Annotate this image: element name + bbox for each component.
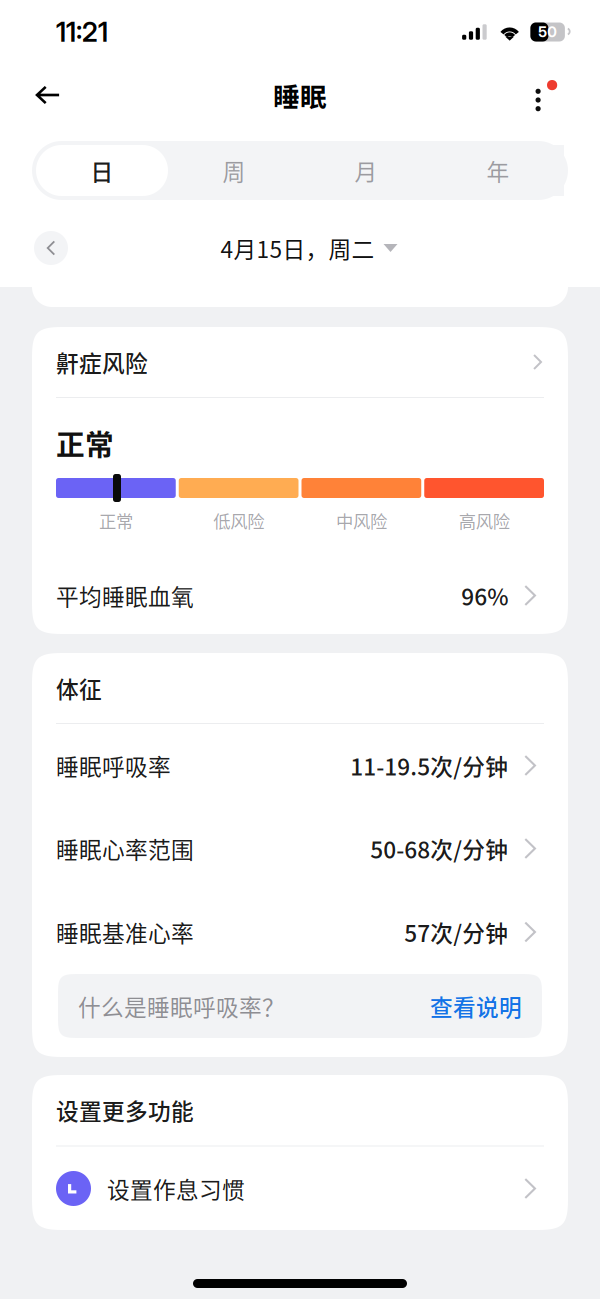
button[interactable]: 日: [36, 145, 168, 196]
button[interactable]: 年: [432, 145, 564, 196]
button[interactable]: 睡眠心率范围: [32, 807, 568, 890]
staticText: 什么是睡眠呼吸率？: [78, 990, 285, 1022]
staticText: 高风险: [459, 508, 510, 533]
button[interactable]: Previous day: [34, 231, 68, 265]
button[interactable]: 周: [168, 145, 300, 196]
staticText: 11:21: [56, 16, 108, 48]
staticText: 11-19.5次/分钟: [350, 749, 508, 782]
button[interactable]: 睡眠基准心率: [32, 890, 568, 974]
staticText: 月: [354, 154, 377, 187]
staticText: 设置作息习惯: [107, 1172, 245, 1205]
button[interactable]: More options: [518, 65, 578, 125]
staticText: 周: [222, 154, 245, 187]
staticText: 正常: [99, 508, 133, 533]
staticText: 睡眠基准心率: [56, 916, 194, 948]
staticText: 4月15日，周二: [220, 232, 374, 264]
staticText: 日: [90, 154, 113, 187]
staticText: 96%: [461, 579, 508, 612]
staticText: 睡眠心率范围: [56, 832, 194, 865]
staticText: 中风险: [336, 508, 387, 533]
staticText: 正常: [56, 422, 114, 464]
staticText: 睡眠: [273, 76, 327, 114]
button[interactable]: Back: [18, 65, 78, 125]
staticText: 50-68次/分钟: [370, 832, 508, 865]
button[interactable]: 睡眠呼吸率: [32, 724, 568, 807]
staticText: 年: [486, 154, 509, 187]
button[interactable]: 鼾症风险: [32, 327, 568, 397]
button[interactable]: 月: [300, 145, 432, 196]
staticText: 设置更多功能: [56, 1094, 194, 1126]
staticText: 睡眠呼吸率: [56, 749, 171, 782]
button[interactable]: 什么是睡眠呼吸率？: [58, 974, 542, 1038]
staticText: 体征: [56, 672, 102, 704]
staticText: 57次/分钟: [404, 916, 508, 948]
staticText: 平均睡眠血氧: [56, 579, 194, 612]
staticText: 鼾症风险: [56, 346, 148, 378]
staticText: 50: [538, 23, 557, 41]
button[interactable]: 设置作息习惯: [32, 1146, 568, 1230]
button[interactable]: 平均睡眠血氧: [32, 557, 568, 634]
staticText: 查看说明: [430, 990, 522, 1022]
staticText: 低风险: [213, 508, 264, 533]
